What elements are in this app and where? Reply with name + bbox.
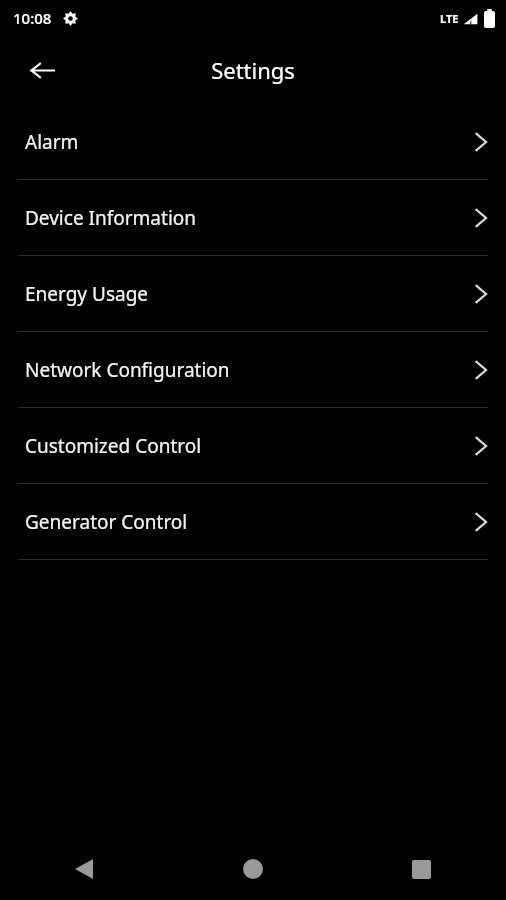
staticText: Energy Usage [25,281,149,307]
button[interactable]: Customized Control [0,408,506,483]
button[interactable]: Device Information [0,180,506,255]
staticText: LTE [440,11,459,26]
staticText: Customized Control [25,433,202,459]
button[interactable]: Energy Usage [0,256,506,331]
staticText: Network Configuration [25,357,230,383]
button[interactable]: Network Configuration [0,332,506,407]
button[interactable]: Recent apps [337,838,506,900]
button[interactable]: Alarm [0,104,506,179]
button[interactable]: Back [18,46,66,94]
staticText: Settings [211,55,295,85]
staticText: Generator Control [25,509,188,535]
button[interactable]: Generator Control [0,484,506,559]
button[interactable]: Home [168,838,337,900]
staticText: 10:08 [13,8,52,28]
staticText: Device Information [25,205,197,231]
button[interactable]: Back [0,838,168,900]
staticText: Alarm [25,129,79,155]
